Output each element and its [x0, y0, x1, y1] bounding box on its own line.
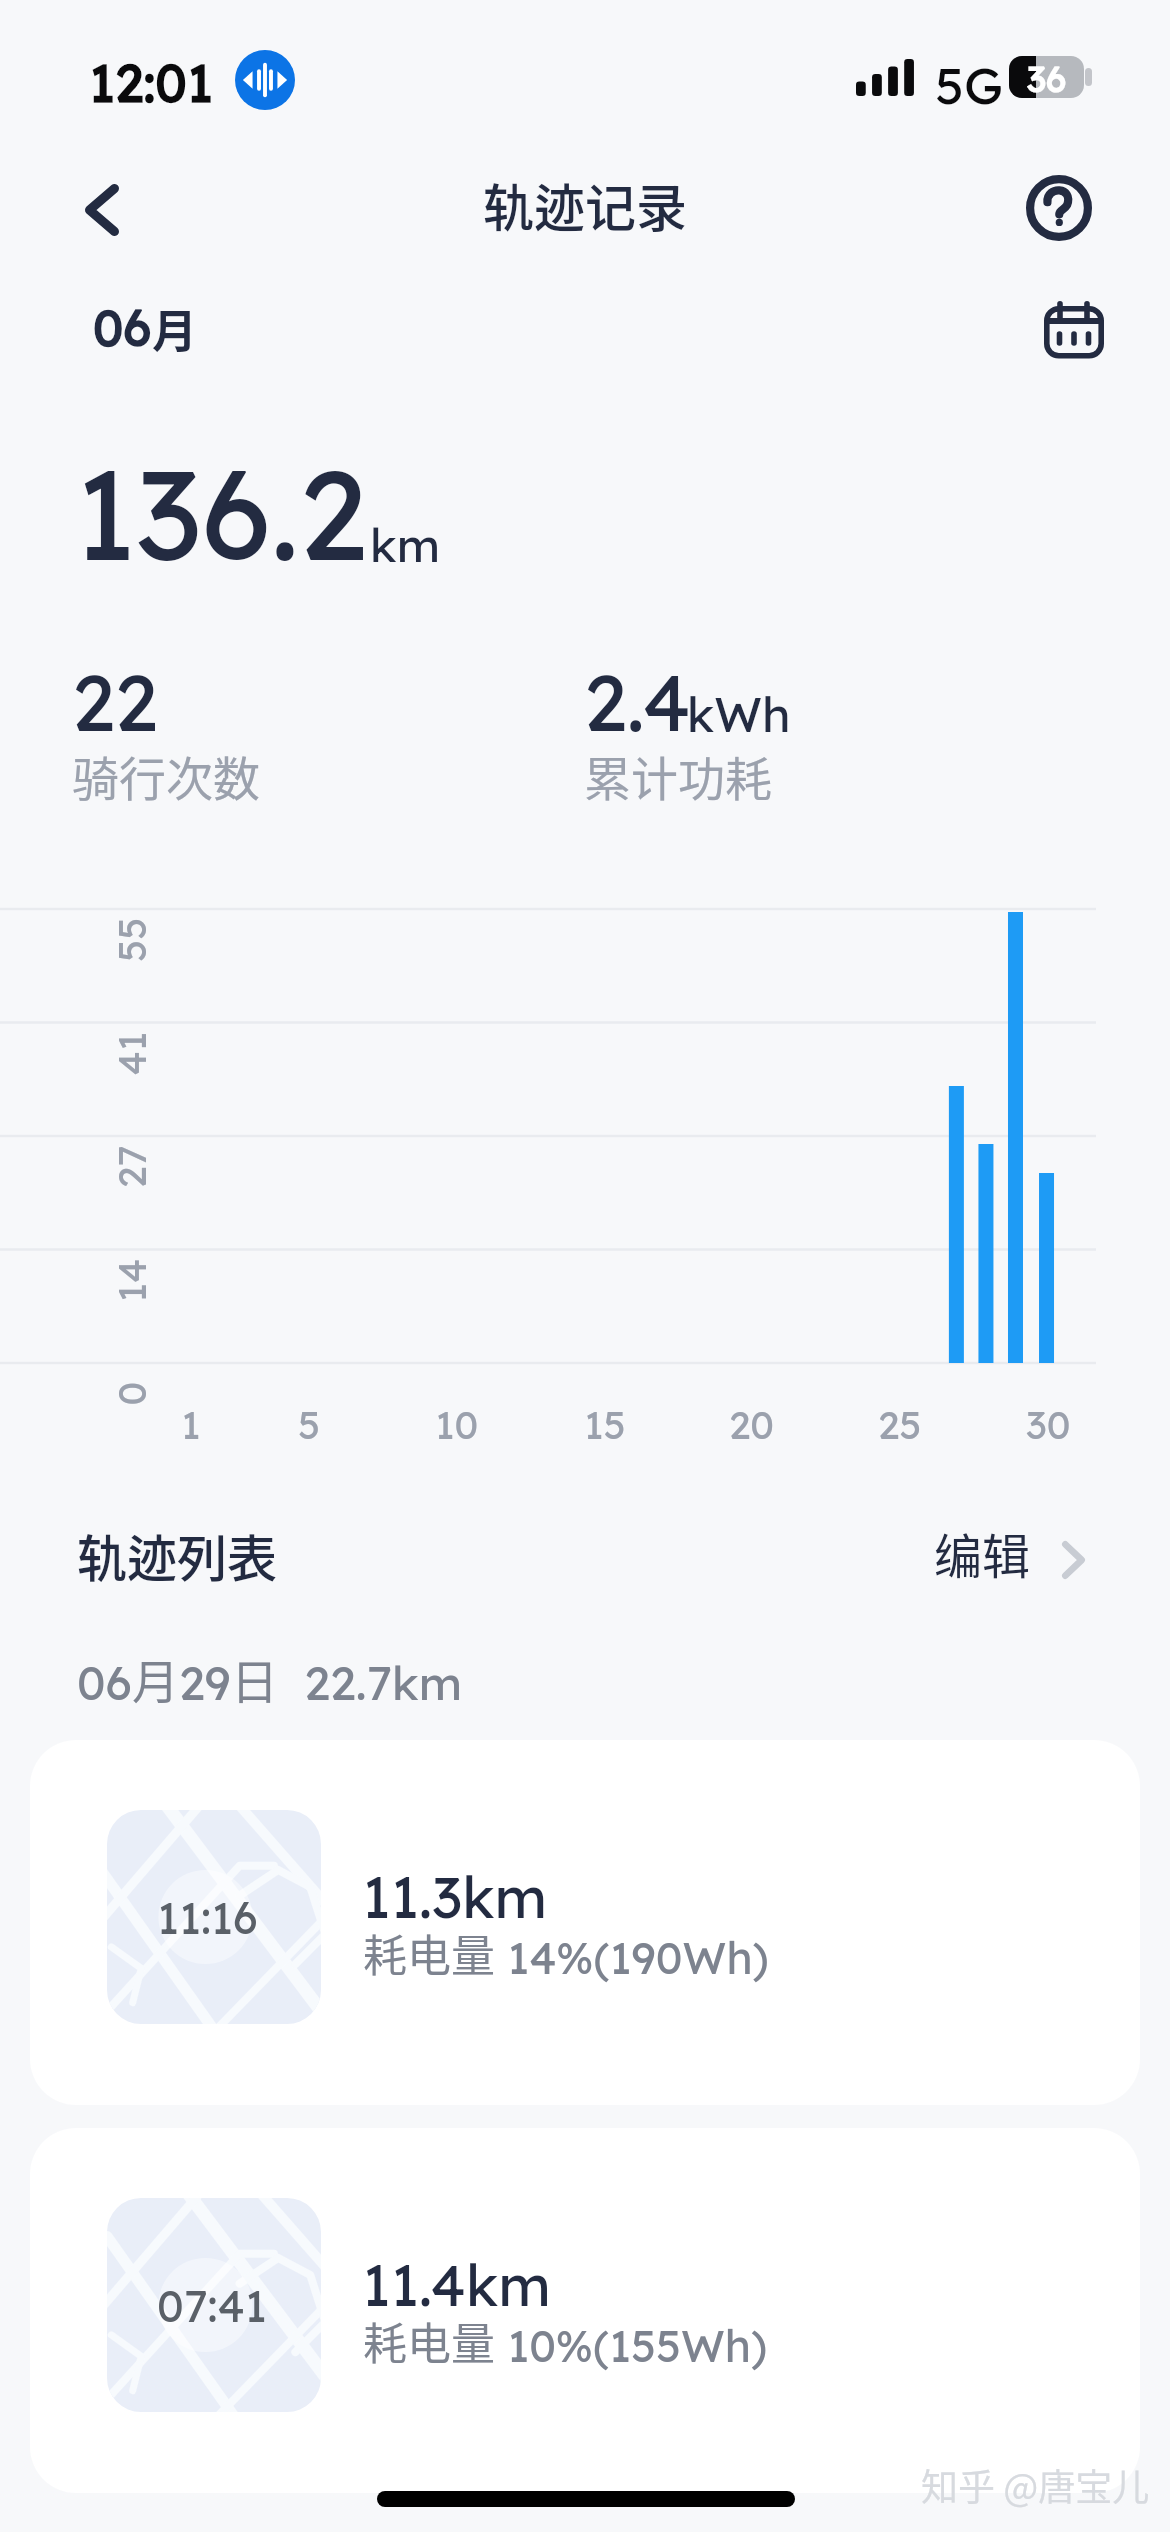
staticText: 22.7km	[278, 1653, 463, 1712]
staticText: 11:16	[157, 1890, 258, 1945]
staticText: 5G	[935, 53, 1004, 117]
staticText: 06	[77, 1653, 132, 1712]
staticText: 136.2	[74, 436, 367, 591]
staticText: 14	[106, 1258, 155, 1302]
staticText: 月	[152, 296, 198, 361]
staticText: 耗电量	[363, 2309, 495, 2373]
staticText: 12:01	[89, 50, 213, 115]
staticText: kWh	[687, 684, 791, 744]
staticText: 0	[106, 1381, 155, 1405]
staticText: 30	[1026, 1400, 1071, 1449]
staticText: 骑行次数	[72, 741, 260, 809]
staticText: 41	[106, 1031, 155, 1075]
staticText: 轨迹列表	[77, 1519, 277, 1591]
staticText: 2.4	[584, 653, 691, 751]
staticText: 耗电量	[363, 1921, 495, 1985]
button[interactable]: Help	[1015, 164, 1103, 252]
staticText: 15	[584, 1400, 626, 1449]
staticText: 月	[132, 1644, 179, 1712]
button[interactable]: Calendar	[1029, 285, 1119, 375]
staticText: 轨迹记录	[483, 168, 688, 242]
button[interactable]: 编辑 Edit track list	[910, 1508, 1120, 1598]
staticText: 27	[107, 1145, 156, 1188]
staticText: 11.3km	[362, 1861, 548, 1932]
staticText: 编辑	[934, 1518, 1031, 1588]
button[interactable]: 11:16	[30, 1740, 1140, 2105]
staticText: 1	[181, 1400, 201, 1449]
staticText: 25	[878, 1400, 922, 1449]
staticText: 5	[298, 1400, 321, 1449]
button[interactable]: 07:41	[30, 2128, 1140, 2493]
staticText: 日	[231, 1644, 278, 1712]
staticText: 06	[93, 296, 152, 359]
staticText: 36	[1027, 56, 1067, 98]
staticText: 55	[107, 917, 156, 962]
staticText: 07:41	[157, 2278, 267, 2333]
staticText: 知乎 @唐宝儿	[921, 2458, 1150, 2512]
staticText: 10	[435, 1400, 479, 1449]
staticText: 14%(190Wh)	[495, 1930, 769, 1985]
staticText: 29	[179, 1653, 231, 1712]
staticText: km	[370, 515, 440, 574]
staticText: 10%(155Wh)	[495, 2318, 768, 2373]
staticText: 20	[729, 1400, 775, 1449]
button[interactable]: Back	[58, 166, 146, 254]
staticText: 11.4km	[362, 2249, 551, 2320]
staticText: 累计功耗	[584, 741, 772, 809]
staticText: 22	[72, 653, 158, 751]
